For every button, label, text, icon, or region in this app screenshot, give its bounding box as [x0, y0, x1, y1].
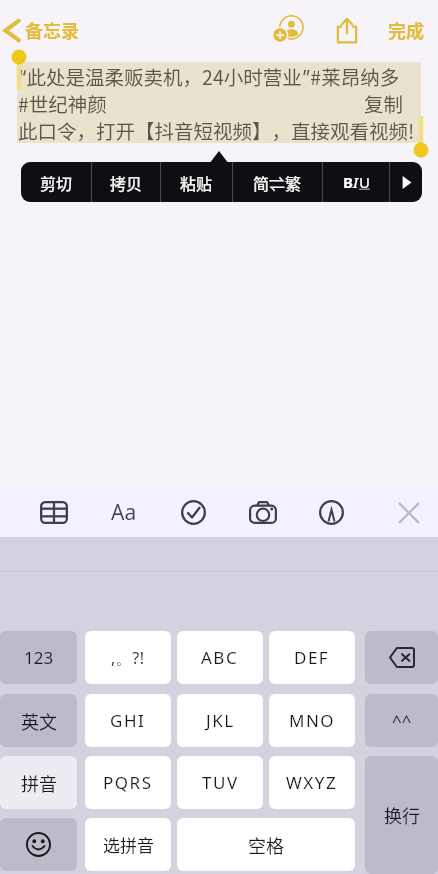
button[interactable]: Backspace: [365, 631, 438, 684]
button[interactable]: ,。?!: [85, 631, 171, 684]
staticText: TUV: [202, 771, 239, 794]
button[interactable]: MNO: [269, 694, 355, 747]
button[interactable]: Close keyboard: [386, 488, 432, 537]
staticText: 换行: [384, 802, 420, 828]
staticText: PQRS: [103, 771, 153, 794]
button[interactable]: JKL: [177, 694, 263, 747]
button[interactable]: 粘贴: [161, 162, 232, 202]
button[interactable]: TUV: [177, 756, 263, 809]
button[interactable]: 换行: [365, 756, 438, 874]
staticText: ,。?!: [111, 647, 145, 669]
staticText: “此处是温柔贩卖机，24小时营业”#莱昂纳多: [18, 62, 400, 89]
button[interactable]: ABC: [177, 631, 263, 684]
button[interactable]: DEF: [269, 631, 355, 684]
button[interactable]: More: [390, 162, 422, 202]
button[interactable]: ^^: [365, 694, 438, 747]
button[interactable]: Checklist: [170, 488, 216, 537]
button[interactable]: 剪切: [21, 162, 91, 202]
button[interactable]: 空格: [177, 818, 355, 871]
button[interactable]: Emoji: [0, 818, 77, 871]
staticText: I: [353, 172, 359, 192]
staticText: 复制: [364, 89, 404, 116]
button[interactable]: B: [323, 162, 389, 202]
button[interactable]: 简⇌繁: [233, 162, 322, 202]
button[interactable]: Text format: [101, 488, 147, 537]
staticText: ABC: [201, 646, 239, 669]
button[interactable]: PQRS: [85, 756, 171, 809]
staticText: 英文: [21, 708, 57, 734]
button[interactable]: 完成: [378, 8, 434, 52]
staticText: MNO: [289, 709, 336, 732]
staticText: B: [343, 172, 353, 192]
staticText: ^^: [392, 709, 412, 732]
button[interactable]: Markup: [308, 488, 354, 537]
staticText: Aa: [111, 498, 137, 527]
staticText: 空格: [248, 832, 284, 858]
staticText: GHI: [110, 709, 146, 732]
button[interactable]: Share: [325, 8, 369, 52]
staticText: 完成: [388, 17, 424, 43]
staticText: 剪切: [40, 171, 73, 194]
staticText: WXYZ: [286, 771, 338, 794]
button[interactable]: 选拼音: [85, 818, 171, 871]
button[interactable]: 英文: [0, 694, 77, 747]
staticText: DEF: [294, 646, 330, 669]
button[interactable]: Add people: [266, 8, 310, 52]
button[interactable]: Camera: [240, 488, 286, 537]
button[interactable]: 123: [0, 631, 77, 684]
staticText: #世纪神颜: [18, 89, 107, 116]
staticText: U: [359, 172, 370, 192]
button[interactable]: 备忘录: [0, 8, 89, 52]
button[interactable]: 拷贝: [92, 162, 160, 202]
staticText: 123: [24, 646, 54, 669]
staticText: 简⇌繁: [253, 171, 302, 194]
button[interactable]: WXYZ: [269, 756, 355, 809]
staticText: 拷贝: [110, 171, 143, 194]
button[interactable]: 拼音: [0, 756, 77, 809]
staticText: 此口令，打开【抖音短视频】，直接观看视频!: [18, 116, 415, 143]
staticText: 粘贴: [180, 171, 213, 194]
button[interactable]: Table: [31, 488, 77, 537]
button[interactable]: GHI: [85, 694, 171, 747]
staticText: 拼音: [21, 770, 57, 796]
staticText: 选拼音: [103, 832, 154, 857]
staticText: 备忘录: [25, 17, 79, 43]
staticText: JKL: [206, 709, 235, 732]
